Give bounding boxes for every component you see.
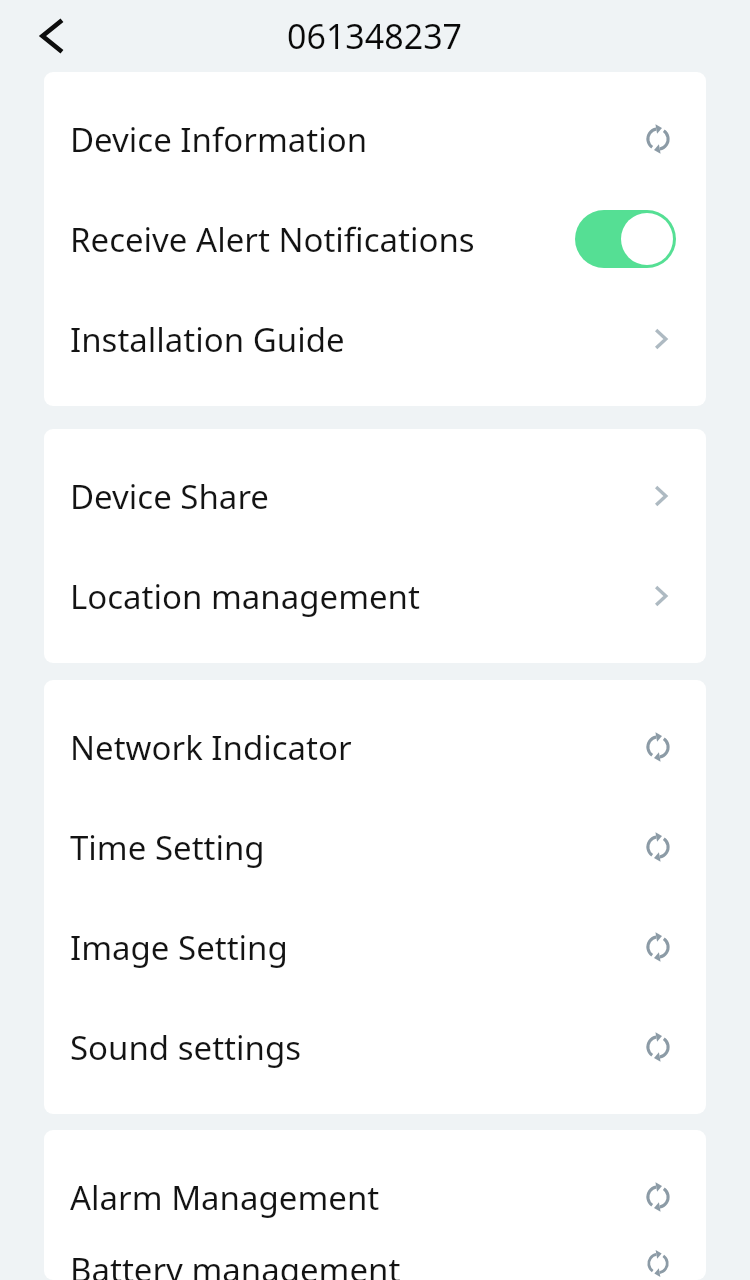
button[interactable]: Device Information: [44, 72, 706, 189]
staticText: Device Share: [70, 474, 269, 519]
staticText: Image Setting: [70, 925, 288, 970]
staticText: Battery management: [70, 1247, 401, 1280]
button[interactable]: Receive Alert Notifications: [44, 189, 706, 289]
staticText: Device Information: [70, 117, 368, 162]
button[interactable]: Network Indicator: [44, 680, 706, 797]
button[interactable]: Alarm Management: [44, 1130, 706, 1247]
other: Refresh: [640, 1247, 676, 1280]
button[interactable]: Battery management: [44, 1247, 706, 1280]
other: Refresh: [640, 1179, 676, 1215]
staticText: Alarm Management: [70, 1175, 380, 1220]
other: Refresh: [640, 929, 676, 965]
other: Refresh: [640, 121, 676, 157]
other: Open: [646, 481, 676, 511]
button[interactable]: Back: [24, 8, 80, 64]
button[interactable]: Installation Guide: [44, 289, 706, 406]
staticText: Location management: [70, 574, 420, 619]
button[interactable]: Device Share: [44, 429, 706, 546]
staticText: 061348237: [287, 13, 463, 59]
staticText: Installation Guide: [70, 317, 345, 362]
button[interactable]: Time Setting: [44, 797, 706, 897]
staticText: Sound settings: [70, 1025, 301, 1070]
staticText: Time Setting: [70, 825, 265, 870]
other: Refresh: [640, 729, 676, 765]
staticText: Network Indicator: [70, 725, 352, 770]
other: Open: [646, 581, 676, 611]
button[interactable]: Image Setting: [44, 897, 706, 997]
other: Refresh: [640, 829, 676, 865]
staticText: Receive Alert Notifications: [70, 217, 475, 262]
button[interactable]: Sound settings: [44, 997, 706, 1114]
button[interactable]: Location management: [44, 546, 706, 663]
button[interactable]: Receive Alert Notifications toggle: [575, 210, 676, 268]
other: Refresh: [640, 1029, 676, 1065]
other: Open: [646, 324, 676, 354]
